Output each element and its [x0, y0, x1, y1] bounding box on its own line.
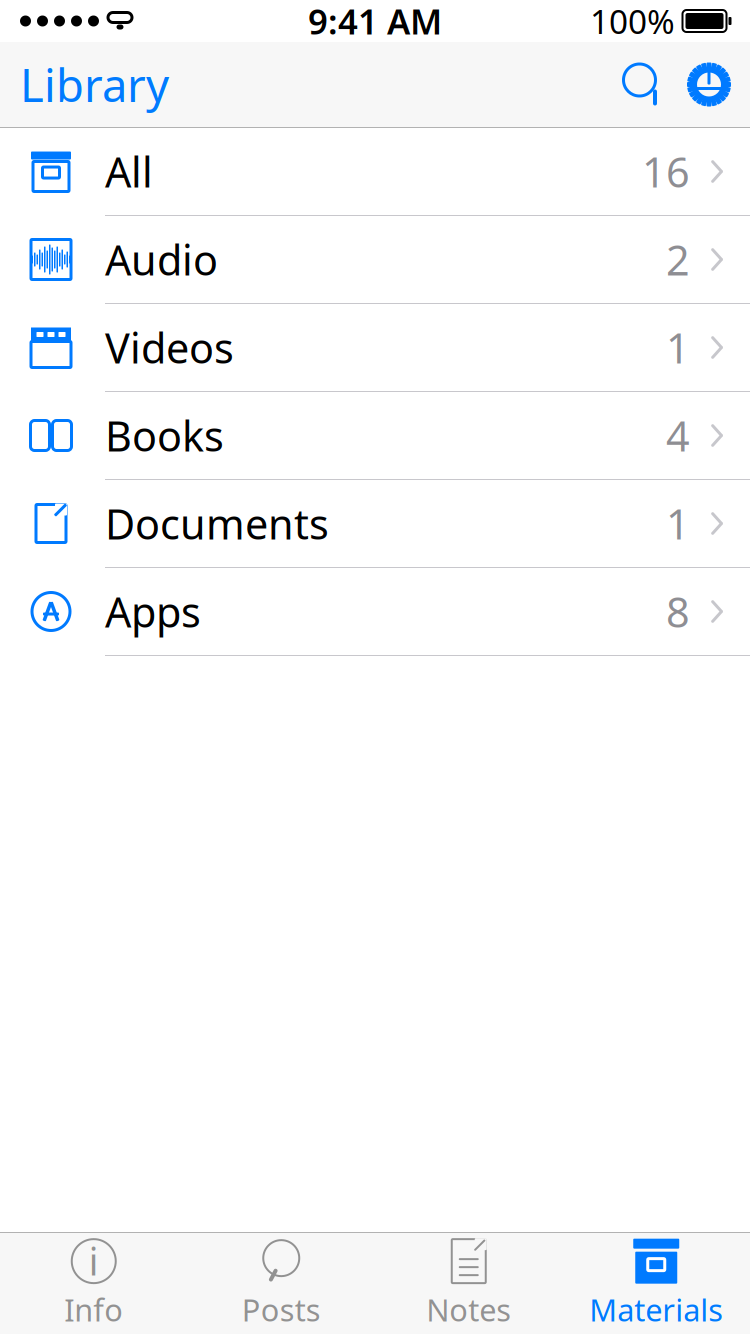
staticText: i — [89, 1236, 99, 1286]
button[interactable]: Documents — [0, 480, 750, 568]
button[interactable]: Books — [0, 392, 750, 480]
button[interactable]: Videos — [0, 304, 750, 392]
button[interactable]: Settings — [677, 60, 750, 108]
button[interactable]: Audio — [0, 216, 750, 304]
staticText: 9:41 AM — [308, 0, 442, 44]
button[interactable]: Notes — [375, 1233, 562, 1333]
staticText: 100% — [590, 0, 675, 43]
staticText: 1 — [666, 496, 690, 551]
staticText: Library — [20, 54, 169, 115]
button[interactable]: Posts — [187, 1233, 375, 1333]
staticText: 4 — [666, 408, 690, 463]
staticText: 1 — [666, 320, 690, 375]
staticText: Apps — [105, 584, 201, 639]
button[interactable]: i — [0, 1233, 187, 1333]
staticText: 16 — [642, 144, 690, 199]
button[interactable]: Materials — [562, 1233, 750, 1333]
staticText: 8 — [666, 584, 690, 639]
button[interactable]: Search — [611, 61, 677, 107]
staticText: Posts — [242, 1289, 321, 1330]
staticText: Notes — [426, 1289, 511, 1330]
staticText: Materials — [589, 1289, 723, 1330]
button[interactable]: All — [0, 128, 750, 216]
staticText: 2 — [666, 232, 690, 287]
staticText: All — [105, 144, 153, 199]
staticText: Documents — [105, 496, 329, 551]
button[interactable]: Library — [0, 42, 169, 127]
button[interactable]: Apps — [0, 568, 750, 656]
staticText: Books — [105, 408, 224, 463]
staticText: Videos — [105, 320, 234, 375]
staticText: Info — [64, 1289, 123, 1330]
staticText: Audio — [105, 232, 218, 287]
